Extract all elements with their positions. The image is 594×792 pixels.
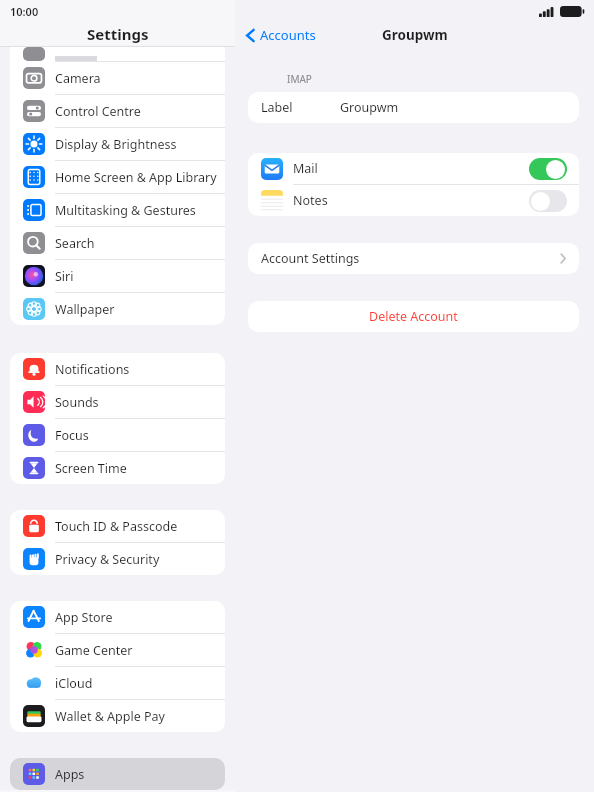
staticText: Display & Brightness [55,136,177,153]
staticText: Groupwm [382,26,448,44]
button[interactable]: Account Settings [248,243,579,274]
staticText: Screen Time [55,460,127,477]
staticText: Multitasking & Gestures [55,202,196,219]
staticText: Settings [87,24,149,44]
staticText: IMAP [287,72,312,86]
staticText: Camera [55,70,101,87]
staticText: App Store [55,609,113,626]
button[interactable]: Multitasking & Gestures [10,194,225,227]
staticText: Search [55,235,95,252]
button[interactable]: Control Centre [10,95,225,128]
staticText: 10:00 [10,4,39,19]
button[interactable]: Notes off [529,190,567,212]
staticText: Wallet & Apple Pay [55,708,165,725]
button[interactable]: Label [248,92,579,123]
button[interactable]: App Store [10,601,225,634]
button[interactable]: Siri [10,260,225,293]
button[interactable]: Wallpaper [10,293,225,325]
staticText: Mail [293,160,318,177]
button[interactable]: Mail on [529,158,567,180]
staticText: Control Centre [55,103,141,120]
button[interactable]: Accounts [244,24,318,46]
staticText: Account Settings [261,250,360,267]
button[interactable]: Privacy & Security [10,543,225,575]
staticText: Home Screen & App Library [55,169,217,186]
staticText: Label [261,99,293,116]
button[interactable]: Notes [248,185,579,216]
button[interactable]: Touch ID & Passcode [10,510,225,543]
staticText: Notes [293,192,328,209]
staticText: Apps [55,766,85,783]
button[interactable]: Wallet & Apple Pay [10,700,225,732]
button[interactable]: Camera [10,62,225,95]
button[interactable]: Mail [248,153,579,184]
button[interactable]: Delete Account [248,301,579,332]
staticText: Groupwm [340,99,399,116]
button[interactable]: Search [10,227,225,260]
button[interactable]: Home Screen & App Library [10,161,225,194]
staticText: Delete Account [369,308,458,325]
staticText: Touch ID & Passcode [55,518,178,535]
button[interactable]: Display & Brightness [10,128,225,161]
button[interactable]: Screen Time [10,452,225,484]
staticText: Game Center [55,642,133,659]
button[interactable]: Focus [10,419,225,452]
button[interactable]: iCloud [10,667,225,700]
button[interactable]: Game Center [10,634,225,667]
button[interactable]: Notifications [10,353,225,386]
staticText: iCloud [55,675,93,692]
staticText: Wallpaper [55,301,115,318]
staticText: Sounds [55,394,99,411]
staticText: Privacy & Security [55,551,160,568]
staticText: Siri [55,268,74,285]
staticText: Notifications [55,361,130,378]
button[interactable]: Apps [10,758,225,790]
button[interactable]: Sounds [10,386,225,419]
staticText: Focus [55,427,89,444]
staticText: Accounts [260,26,316,44]
